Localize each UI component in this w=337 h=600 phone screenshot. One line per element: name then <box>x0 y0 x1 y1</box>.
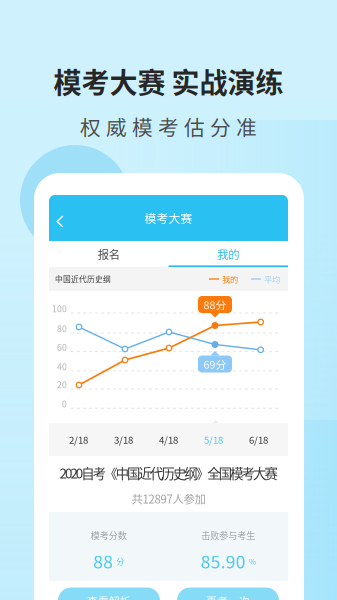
button[interactable]: 查看解析 <box>58 587 160 600</box>
staticText: 20 <box>57 378 67 391</box>
staticText: 再考一次 <box>206 593 250 600</box>
staticText: 我的 <box>217 246 239 262</box>
staticText: 69分 <box>203 356 226 372</box>
staticText: 权 威 模 考 估 分 准 <box>80 111 257 141</box>
staticText: 模考大赛 <box>144 209 192 226</box>
staticText: 0 <box>62 397 67 410</box>
staticText: % <box>249 555 256 567</box>
staticText: 5/18 <box>204 432 223 446</box>
staticText: 85.90 <box>201 548 246 574</box>
button[interactable]: 报名 <box>49 241 168 267</box>
staticText: 100 <box>52 302 67 315</box>
staticText: 40 <box>57 360 67 373</box>
staticText: 88 <box>93 548 113 574</box>
button[interactable]: 再考一次 <box>177 587 279 600</box>
staticText: 模考分数 <box>91 528 127 541</box>
button[interactable]: 我的 <box>168 241 288 267</box>
staticText: 2020自考《中国近代历史纲》全国模考大赛 <box>59 463 277 482</box>
staticText: 我的 <box>222 273 238 285</box>
staticText: 88分 <box>203 297 226 312</box>
staticText: 3/18 <box>114 432 133 446</box>
staticText: 中国近代历史纲 <box>55 273 111 285</box>
staticText: 6/18 <box>249 432 268 446</box>
button[interactable]: Back <box>49 195 75 241</box>
staticText: 80 <box>57 322 67 335</box>
staticText: 查看解析 <box>87 593 131 600</box>
staticText: 2/18 <box>69 432 88 446</box>
staticText: 60 <box>57 341 67 353</box>
staticText: 共12897人参加 <box>131 490 205 507</box>
staticText: 击败参与考生 <box>201 528 255 541</box>
staticText: 模考大赛 实战演练 <box>53 61 283 101</box>
staticText: 报名 <box>98 246 120 262</box>
staticText: 平均 <box>264 273 280 285</box>
staticText: 4/18 <box>159 432 178 446</box>
staticText: 分 <box>116 555 124 567</box>
